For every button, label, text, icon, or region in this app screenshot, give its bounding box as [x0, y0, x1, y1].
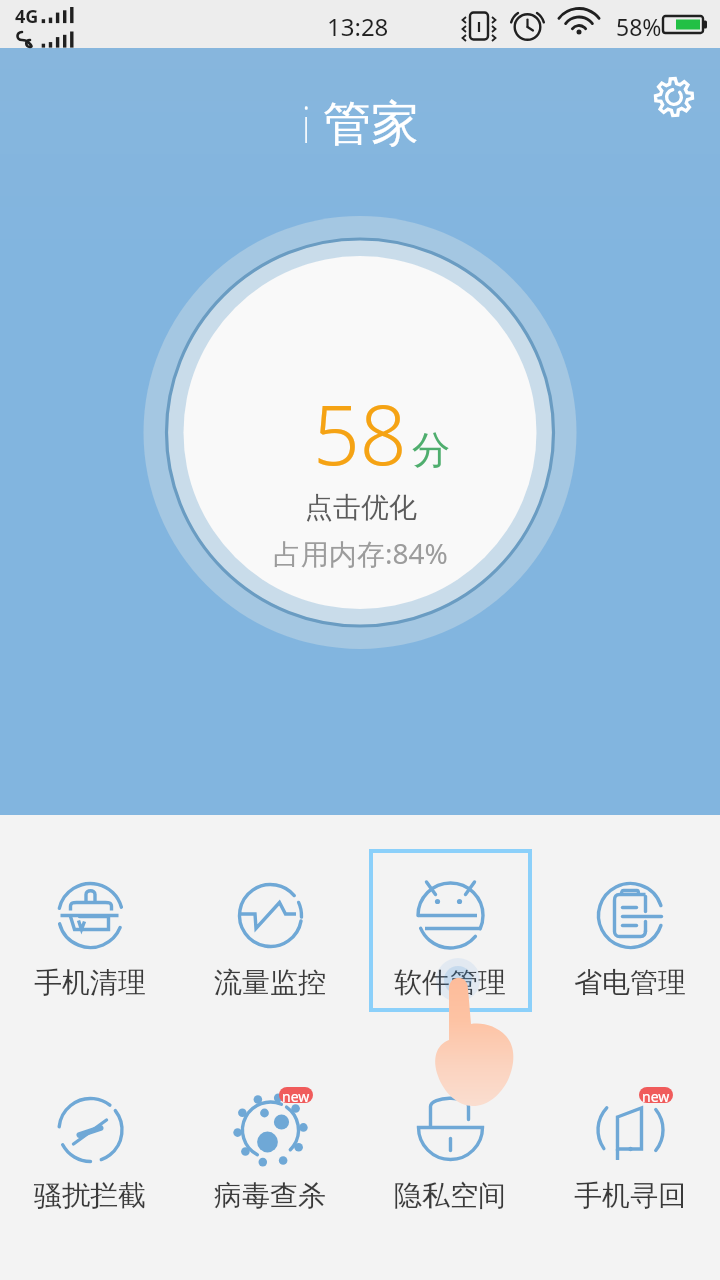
staticText: 流量监控 [214, 965, 326, 1000]
button[interactable] [9, 849, 172, 1012]
staticText: 省电管理 [574, 965, 686, 1000]
staticText: 58 [313, 377, 407, 489]
staticText: 隐私空间 [394, 1178, 506, 1213]
staticText: 58% [616, 11, 662, 42]
button[interactable] [369, 1064, 532, 1227]
staticText: new [642, 1087, 670, 1103]
staticText: 软件管理 [394, 965, 506, 1000]
button[interactable] [549, 849, 712, 1012]
staticText: 手机清理 [34, 965, 146, 1000]
staticText: 骚扰拦截 [34, 1178, 146, 1213]
button[interactable] [369, 849, 532, 1012]
staticText: 管家 [323, 94, 419, 154]
button[interactable] [189, 849, 352, 1012]
button[interactable] [549, 1064, 712, 1227]
staticText: i [301, 90, 312, 158]
staticText: 4G [15, 4, 39, 29]
staticText: 手机寻回 [574, 1178, 686, 1213]
button[interactable] [189, 1064, 352, 1227]
staticText: 分 [412, 426, 450, 474]
button[interactable] [9, 1064, 172, 1227]
button[interactable]: Settings [645, 68, 703, 126]
staticText: new [282, 1087, 310, 1103]
staticText: 病毒查杀 [214, 1178, 326, 1213]
staticText: 点击优化 [305, 490, 417, 525]
staticText: 占用内存:84% [273, 534, 448, 572]
staticText: 13:28 [327, 10, 389, 43]
